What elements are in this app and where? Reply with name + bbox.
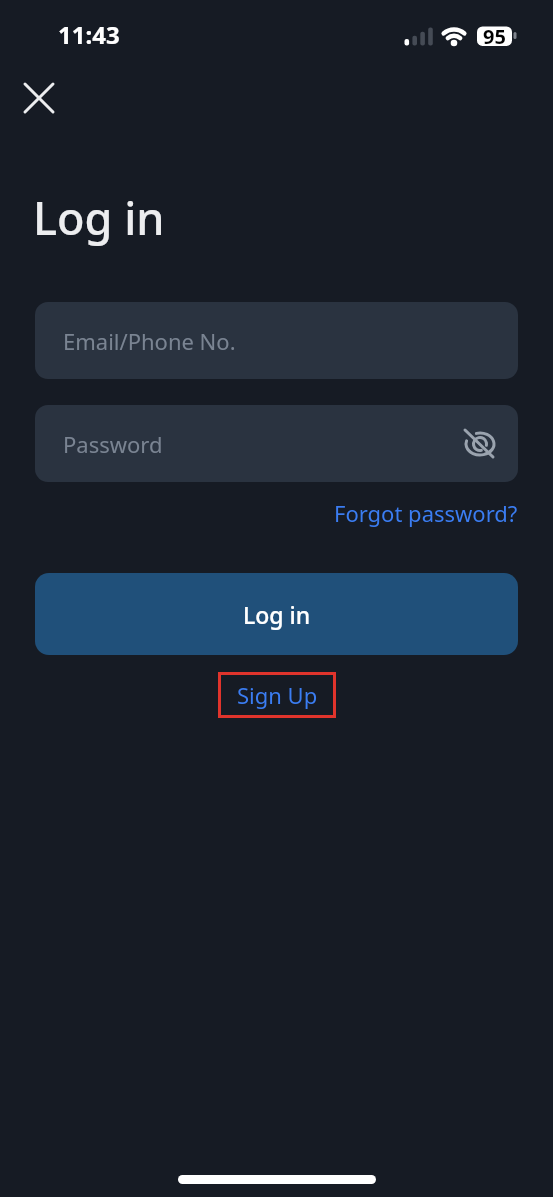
staticText: Email/Phone No. xyxy=(63,326,236,356)
button[interactable] xyxy=(18,77,60,119)
button[interactable] xyxy=(464,428,496,460)
button[interactable]: Password xyxy=(35,405,518,482)
button[interactable]: Log in xyxy=(35,573,518,655)
button[interactable]: Email/Phone No. xyxy=(35,302,518,379)
staticText: 95 xyxy=(483,23,506,50)
staticText: 11:43 xyxy=(58,18,120,51)
button[interactable]: Sign Up xyxy=(218,672,336,718)
staticText: Password xyxy=(63,429,163,459)
staticText: Log in xyxy=(33,187,165,248)
staticText: Log in xyxy=(243,599,311,630)
button[interactable]: Forgot password? xyxy=(334,498,518,528)
staticText: Sign Up xyxy=(237,680,318,710)
